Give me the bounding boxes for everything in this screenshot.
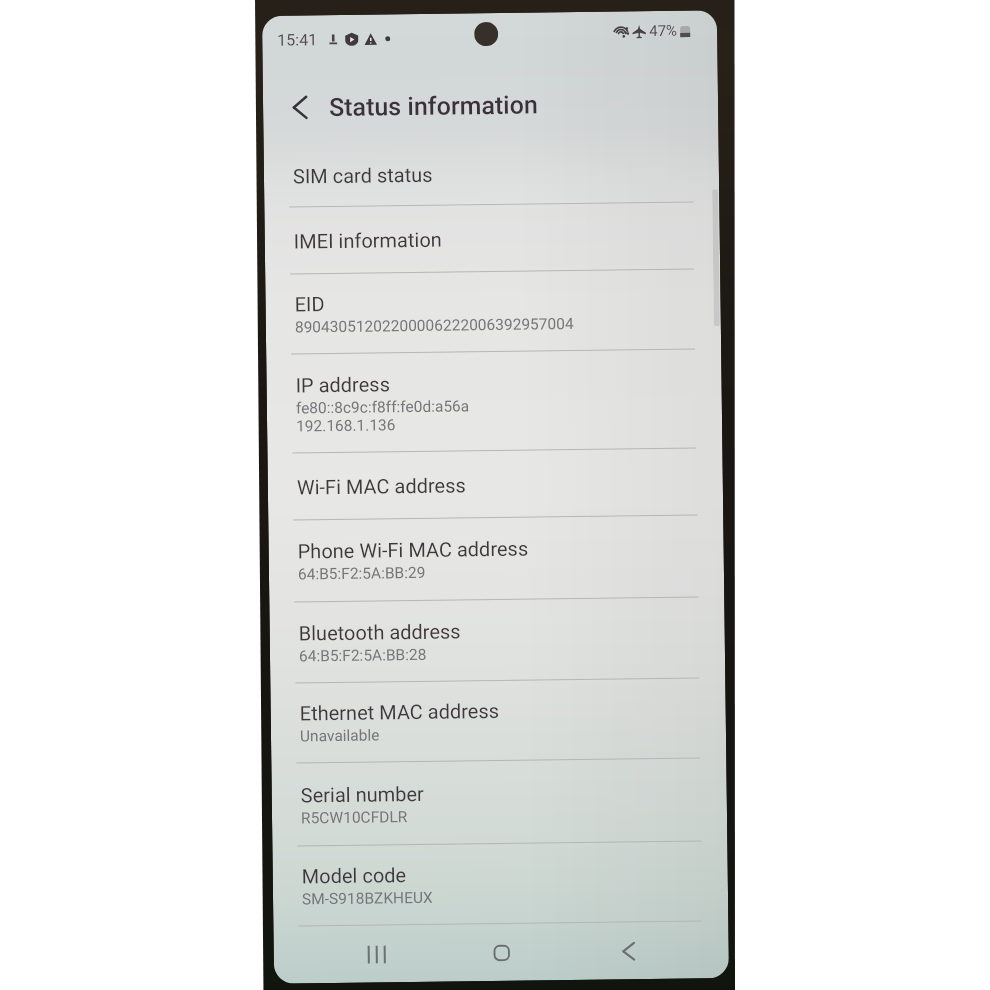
button[interactable]: Ethernet MAC address	[270, 678, 726, 764]
staticText: 89043051202200006222006392957004	[295, 315, 574, 336]
button[interactable]: IP address	[266, 349, 722, 454]
button[interactable]: SIM card status	[263, 138, 719, 208]
button[interactable]: Wi-Fi MAC address	[267, 448, 723, 521]
button[interactable]: EID	[265, 269, 721, 355]
staticText: Ethernet MAC address	[300, 699, 500, 724]
staticText: Serial number	[301, 782, 425, 806]
staticText: 64:B5:F2:5A:BB:29	[298, 564, 426, 583]
staticText: 192.168.1.136	[296, 416, 396, 435]
staticText: R5CW10CFDLR	[301, 808, 408, 827]
staticText: 64:B5:F2:5A:BB:28	[299, 646, 427, 665]
button[interactable]: Back	[277, 84, 323, 131]
button[interactable]: Back	[561, 922, 682, 980]
staticText: Model code	[302, 863, 407, 887]
button[interactable]: IMEI information	[264, 202, 720, 275]
button[interactable]: Bluetooth address	[269, 597, 725, 684]
button[interactable]: Model code	[272, 841, 728, 927]
staticText: IMEI information	[294, 228, 442, 253]
staticText: Unavailable	[300, 726, 380, 745]
staticText: SIM card status	[293, 163, 433, 188]
staticText: 15:41	[277, 30, 317, 50]
staticText: 47%	[649, 22, 677, 40]
staticText: Wi-Fi MAC address	[297, 473, 466, 498]
button[interactable]: Phone Wi-Fi MAC address	[268, 515, 724, 603]
staticText: EID	[294, 292, 325, 315]
button[interactable]: Home	[441, 923, 562, 982]
staticText: Bluetooth address	[298, 619, 461, 644]
button[interactable]: Recents	[320, 925, 442, 983]
staticText: Status information	[329, 90, 538, 122]
staticText: Phone Wi-Fi MAC address	[297, 537, 529, 562]
staticText: SM-S918BZKHEUX	[302, 889, 433, 908]
button[interactable]: Serial number	[271, 758, 727, 847]
staticText: IP address	[295, 372, 391, 396]
staticText: fe80::8c9c:f8ff:fe0d:a56a	[296, 397, 470, 417]
